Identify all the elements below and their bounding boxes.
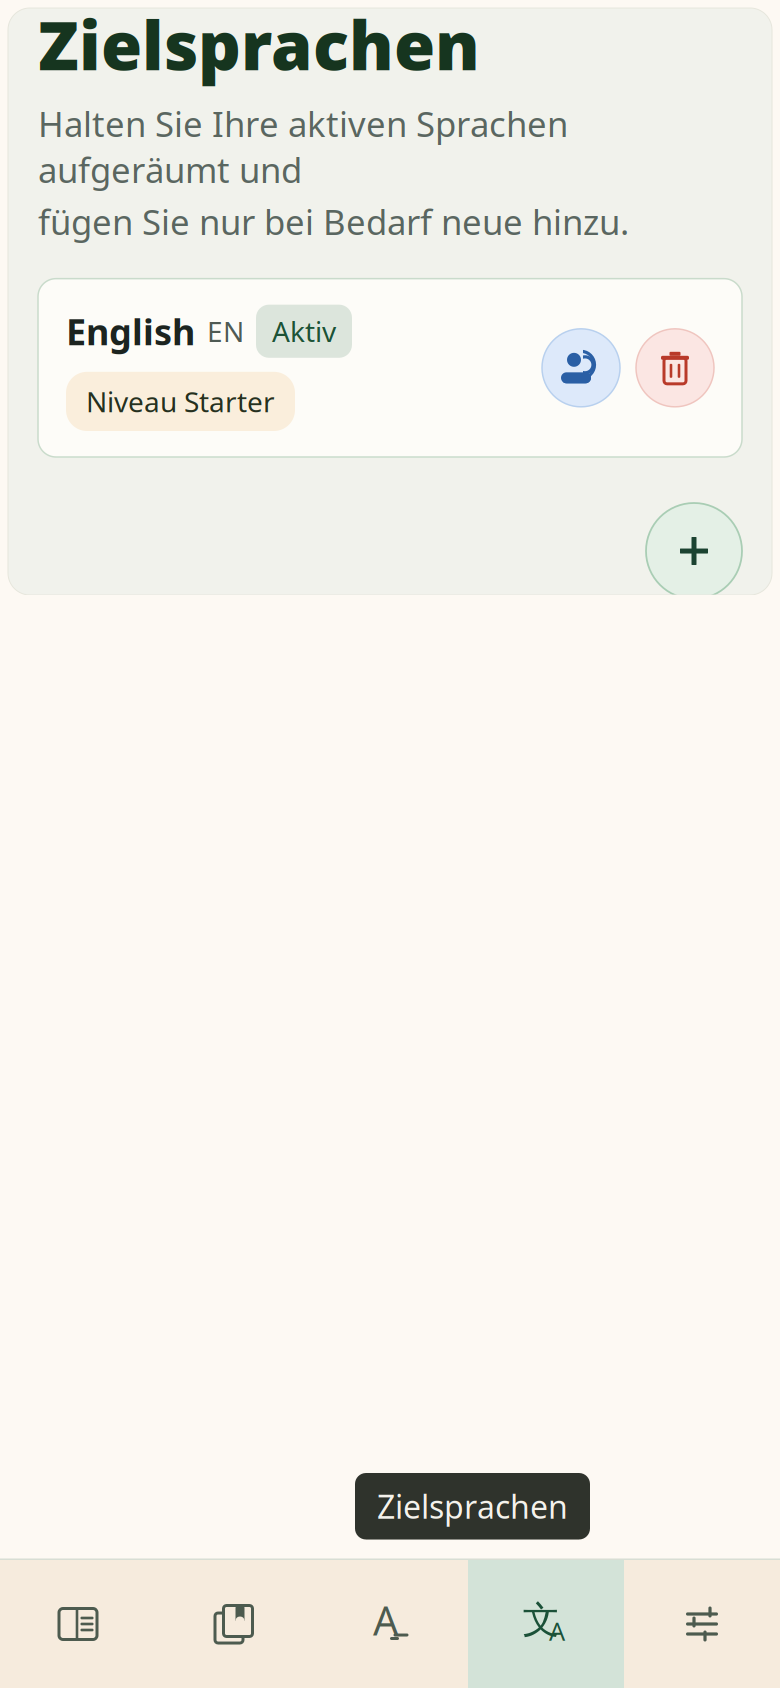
staticText: fügen Sie nur bei Bedarf neue hinzu. xyxy=(38,199,629,245)
staticText: Aktiv xyxy=(272,313,336,350)
button[interactable]: Einstellungen xyxy=(624,1560,780,1688)
staticText: A xyxy=(549,1614,565,1648)
staticText: Halten Sie Ihre aktiven Sprachen aufgerä… xyxy=(38,100,568,193)
staticText: English xyxy=(66,307,195,355)
button[interactable]: Lesen xyxy=(0,1560,156,1688)
staticText: Niveau Starter xyxy=(86,383,275,420)
button[interactable]: Sprache hinzufügen xyxy=(646,503,742,599)
button[interactable]: Rechtschreibung xyxy=(312,1560,468,1688)
button[interactable]: Aussprache anhören xyxy=(542,329,620,407)
button[interactable]: Zielsprachen xyxy=(468,1560,624,1688)
staticText: EN xyxy=(207,313,244,350)
staticText: 文 xyxy=(522,1597,559,1643)
staticText: Zielsprachen xyxy=(377,1485,568,1527)
staticText: A xyxy=(373,1593,399,1646)
button[interactable]: Bibliothek xyxy=(156,1560,312,1688)
staticText: Zielsprachen xyxy=(38,0,480,88)
button[interactable]: Sprache löschen xyxy=(636,329,714,407)
